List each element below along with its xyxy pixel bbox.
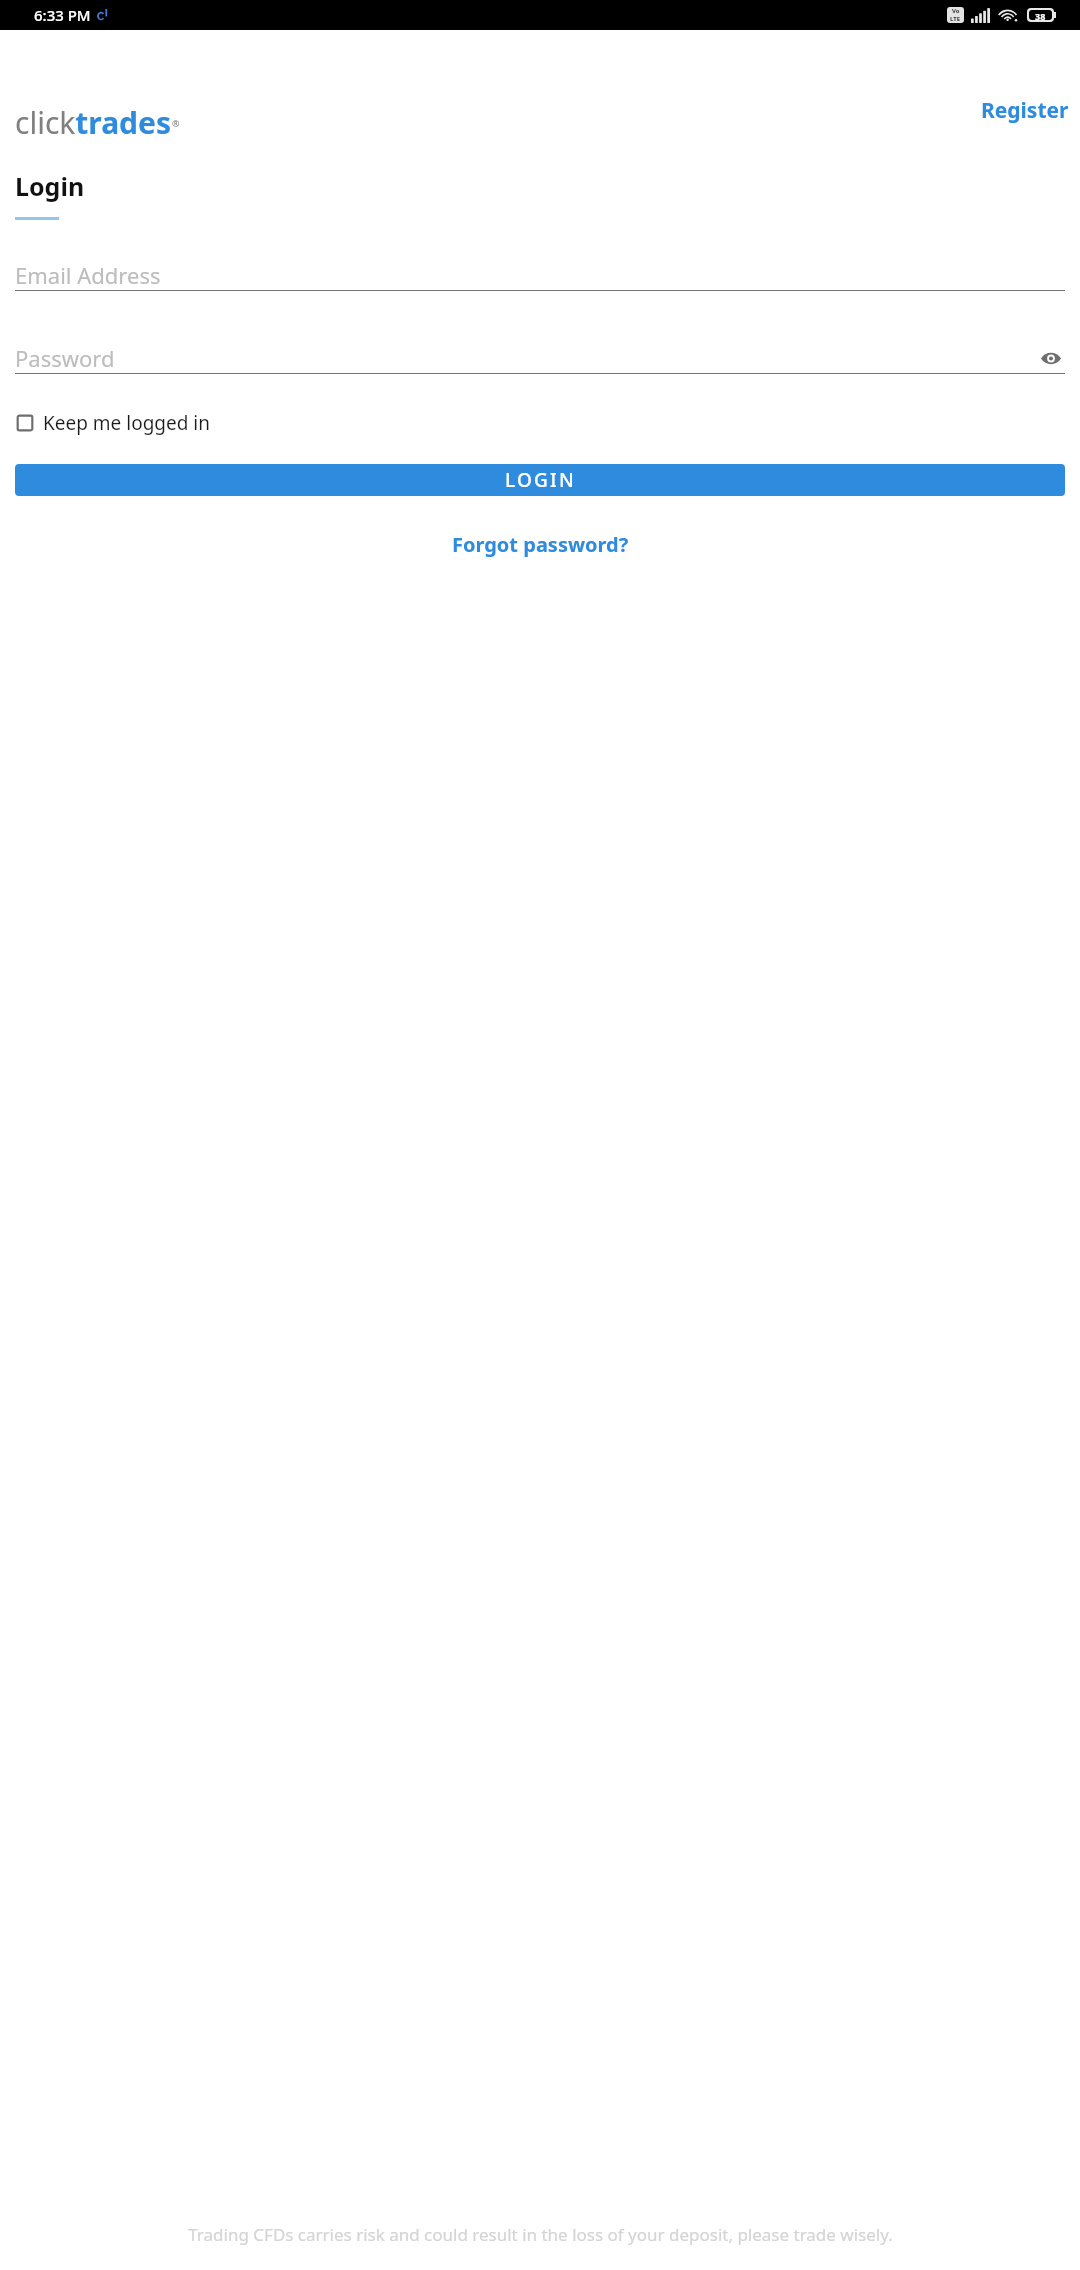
staticText: 38 (1035, 10, 1046, 20)
staticText: Login (15, 169, 85, 203)
staticText: LTE (950, 15, 961, 23)
staticText: Forgot password? (452, 531, 629, 558)
button[interactable]: Forgot password? (440, 525, 641, 564)
button[interactable]: Password (15, 343, 1065, 374)
button[interactable]: Email Address (15, 260, 1065, 291)
staticText: Vo (952, 7, 960, 15)
staticText: Keep me logged in (43, 410, 210, 436)
staticText: clicktrades (15, 102, 172, 143)
button[interactable]: Register (970, 90, 1080, 131)
staticText: Password (15, 343, 115, 373)
staticText: ® (172, 117, 180, 129)
staticText: LOGIN (505, 467, 576, 493)
staticText: Trading CFDs carries risk and could resu… (188, 2223, 893, 2246)
staticText: Register (981, 96, 1069, 125)
button[interactable]: Show password (1037, 348, 1065, 369)
staticText: Email Address (15, 260, 161, 290)
staticText: 6:33 PM (34, 5, 91, 25)
button[interactable]: LOGIN (15, 464, 1065, 496)
button[interactable]: Keep me logged in (15, 404, 212, 442)
